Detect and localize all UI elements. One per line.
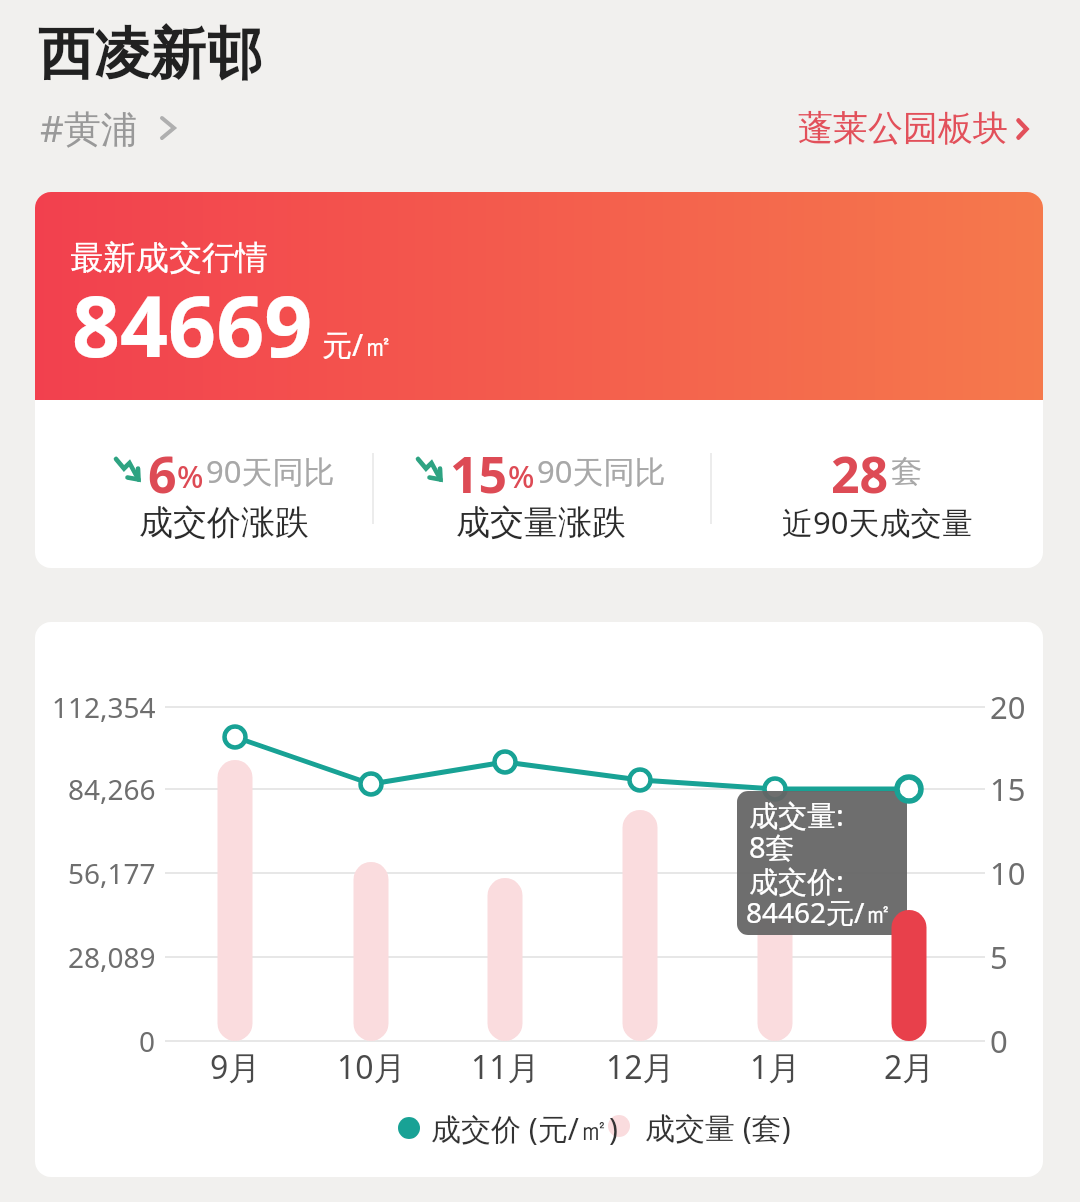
staticText: 15 bbox=[990, 768, 1026, 810]
staticText: 8套 bbox=[749, 827, 795, 867]
staticText: 56,177 bbox=[68, 854, 156, 892]
staticText: 近90天成交量 bbox=[782, 501, 973, 543]
staticText: 元/㎡ bbox=[322, 324, 394, 365]
button[interactable] bbox=[790, 102, 1040, 154]
staticText: 成交量: bbox=[749, 795, 844, 835]
staticText: 90天同比 bbox=[206, 450, 335, 492]
staticText: 成交价涨跌 bbox=[139, 501, 309, 544]
staticText: 6 bbox=[148, 440, 177, 502]
staticText: 90天同比 bbox=[537, 450, 666, 492]
staticText: 0 bbox=[139, 1022, 156, 1060]
staticText: 10 bbox=[990, 852, 1026, 894]
staticText: 28,089 bbox=[68, 938, 156, 976]
staticText: 2月 bbox=[884, 1045, 935, 1089]
staticText: 1月 bbox=[750, 1045, 801, 1089]
staticText: 成交价 (元/㎡) bbox=[431, 1108, 618, 1149]
staticText: 11月 bbox=[471, 1045, 540, 1089]
staticText: 西凌新邨 bbox=[38, 19, 262, 90]
button[interactable] bbox=[35, 192, 1043, 568]
staticText: 28 bbox=[831, 440, 889, 502]
staticText: 112,354 bbox=[52, 688, 156, 726]
staticText: 成交价: bbox=[749, 861, 844, 901]
staticText: 15 bbox=[450, 440, 508, 502]
staticText: 蓬莱公园板块 bbox=[798, 106, 1008, 150]
staticText: % bbox=[508, 455, 535, 497]
staticText: 最新成交行情 bbox=[70, 237, 268, 279]
staticText: 9月 bbox=[210, 1045, 261, 1089]
staticText: 84,266 bbox=[68, 770, 156, 808]
staticText: 套 bbox=[891, 452, 922, 491]
staticText: 10月 bbox=[337, 1045, 406, 1089]
staticText: #黄浦 bbox=[40, 102, 138, 153]
button[interactable] bbox=[36, 102, 186, 152]
staticText: 12月 bbox=[606, 1045, 675, 1089]
button[interactable] bbox=[35, 622, 1043, 1177]
staticText: 5 bbox=[990, 936, 1008, 978]
staticText: 84462元/㎡ bbox=[746, 893, 893, 931]
staticText: 成交量 (套) bbox=[645, 1107, 791, 1148]
staticText: 成交量涨跌 bbox=[456, 501, 626, 544]
staticText: % bbox=[177, 455, 204, 497]
staticText: 20 bbox=[990, 686, 1026, 728]
staticText: 84669 bbox=[72, 267, 313, 381]
staticText: 0 bbox=[990, 1020, 1008, 1062]
